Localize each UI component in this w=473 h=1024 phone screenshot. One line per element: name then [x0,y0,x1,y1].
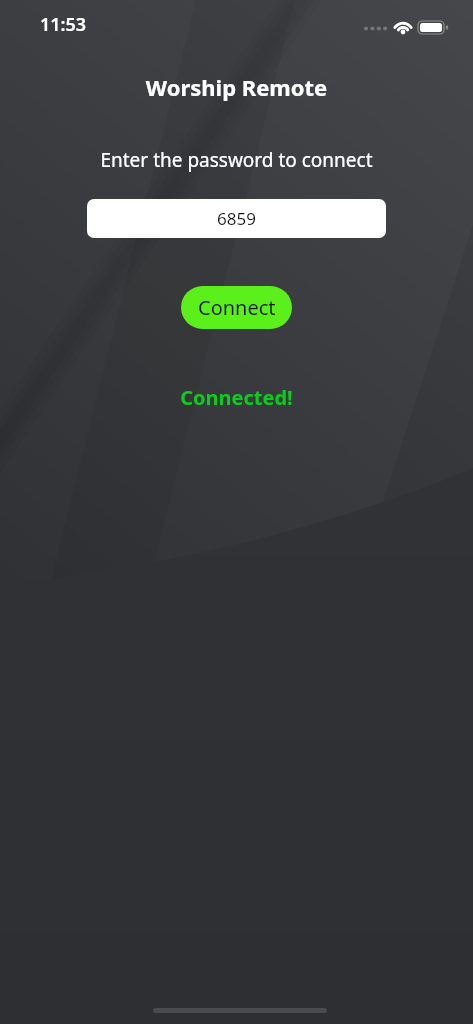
button[interactable]: Connect [181,286,292,329]
staticText: 11:53 [40,12,87,37]
staticText: Enter the password to connect [0,147,473,173]
staticText: Connect [198,294,276,321]
staticText: Connected! [0,384,473,411]
button[interactable]: 6859 [87,199,386,238]
staticText: 6859 [217,207,256,230]
staticText: Worship Remote [0,72,473,102]
